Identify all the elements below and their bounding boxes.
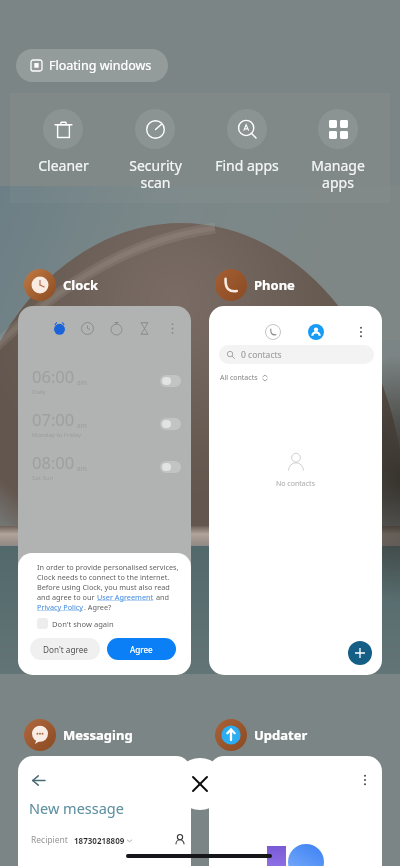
button[interactable]: 06:00 [18,306,191,675]
button[interactable]: Close [174,758,226,810]
button[interactable]: Floating windows [16,49,168,82]
staticText: and agree to our [37,592,97,602]
button[interactable]: 0 contacts [219,345,374,364]
button[interactable]: Cleaner [17,109,109,175]
button[interactable]: Toggle alarm [160,418,181,430]
button[interactable]: Agree [107,638,176,660]
staticText: User Agreement [97,592,154,602]
staticText: Before using Clock, you must also read [37,582,170,592]
staticText: Clock [63,276,99,294]
staticText: Sat Sun [32,474,54,482]
button[interactable]: Toggle alarm [160,375,181,387]
button[interactable]: Toggle alarm [160,461,181,473]
button[interactable]: Contacts [302,318,330,346]
button[interactable]: Manage apps [293,109,383,192]
staticText: 08:00 [32,451,75,473]
button[interactable]: Don't show again [37,618,114,629]
staticText: All contacts [220,373,258,383]
staticText: Monday to Friday [32,431,82,439]
button[interactable]: Add contact [348,641,372,665]
staticText: Don't agree [43,644,88,655]
button[interactable]: Updater [215,717,308,753]
staticText: 06:00 [32,365,75,387]
staticText: . Agree? [84,602,112,612]
button[interactable]: New message [18,756,191,866]
staticText: Security scan [129,156,182,192]
staticText: am [77,378,87,387]
staticText: 0 contacts [241,349,282,361]
staticText: Floating windows [49,57,152,74]
button[interactable] [209,756,382,866]
staticText: am [77,464,87,473]
button[interactable]: Don't agree [30,638,100,660]
staticText: Find apps [215,156,279,175]
staticText: Recipient [31,834,68,846]
staticText: am [77,421,87,430]
staticText: No contacts [276,479,315,489]
staticText: Clock needs to connect to the internet. [37,572,170,582]
staticText: New message [29,798,124,818]
staticText: Agree [130,644,153,655]
button[interactable]: Call history [209,306,382,675]
staticText: 18730218809 [74,835,125,846]
staticText: Privacy Policy [37,602,84,612]
button[interactable]: Messaging [24,717,133,753]
staticText: Manage apps [311,156,365,192]
staticText: In order to provide personalised service… [37,562,179,572]
staticText: Messaging [63,726,133,744]
button[interactable]: Phone [215,267,295,303]
staticText: and [154,592,169,602]
button[interactable]: All contacts [220,373,268,383]
staticText: Don't show again [52,619,114,629]
staticText: Cleaner [38,156,89,175]
staticText: Updater [254,726,308,744]
staticText: 07:00 [32,408,75,430]
button[interactable]: Call history [259,318,287,346]
button[interactable]: Clock [24,267,99,303]
staticText: Daily [32,388,46,396]
button[interactable]: More options [347,318,375,346]
button[interactable]: Security scan [109,109,201,192]
staticText: Phone [254,276,295,294]
button[interactable]: Find apps [201,109,293,175]
